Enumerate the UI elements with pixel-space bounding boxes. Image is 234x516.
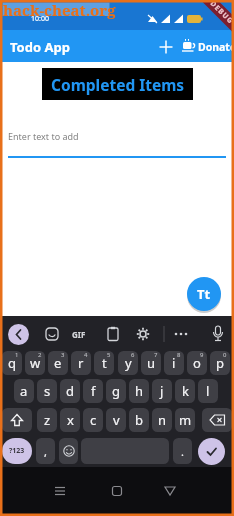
- button[interactable]: .: [173, 438, 192, 464]
- staticText: p: [216, 354, 224, 372]
- staticText: w: [30, 354, 41, 372]
- staticText: y: [125, 354, 132, 372]
- staticText: 5: [107, 351, 111, 359]
- button[interactable]: [150, 475, 190, 511]
- staticText: b: [135, 411, 143, 429]
- button[interactable]: w: [25, 351, 45, 375]
- staticText: 9: [200, 351, 204, 359]
- staticText: 2: [38, 351, 42, 359]
- button[interactable]: [2, 408, 32, 432]
- button[interactable]: q: [2, 351, 22, 375]
- staticText: Donate: [198, 40, 234, 54]
- button[interactable]: i: [164, 351, 184, 375]
- button[interactable]: s: [37, 379, 57, 403]
- button[interactable]: r: [71, 351, 91, 375]
- button[interactable]: x: [60, 408, 80, 432]
- staticText: f: [91, 382, 96, 400]
- button[interactable]: [40, 475, 80, 511]
- button[interactable]: z: [37, 408, 57, 432]
- staticText: 6: [131, 351, 135, 359]
- button[interactable]: [8, 324, 29, 345]
- staticText: n: [158, 411, 167, 429]
- button[interactable]: y: [118, 351, 138, 375]
- staticText: 1: [15, 351, 19, 359]
- button[interactable]: t: [94, 351, 114, 375]
- button[interactable]: [59, 438, 78, 464]
- button[interactable]: m: [175, 408, 195, 432]
- staticText: u: [147, 354, 156, 372]
- staticText: k: [182, 382, 189, 400]
- staticText: d: [66, 382, 74, 400]
- button[interactable]: v: [106, 408, 126, 432]
- staticText: GIF: [72, 329, 86, 340]
- staticText: ?123: [9, 446, 25, 456]
- staticText: x: [67, 411, 74, 429]
- staticText: ,: [44, 444, 47, 459]
- staticText: hack-cheat.org: [3, 0, 116, 20]
- staticText: s: [44, 382, 51, 400]
- staticText: i: [172, 354, 176, 372]
- button[interactable]: n: [152, 408, 172, 432]
- button[interactable]: b: [129, 408, 149, 432]
- button[interactable]: Tt: [187, 277, 221, 311]
- button[interactable]: p: [210, 351, 230, 375]
- staticText: Tt: [197, 285, 211, 303]
- staticText: j: [160, 382, 164, 400]
- button[interactable]: Completed Items: [42, 68, 193, 100]
- staticText: 10:00: [31, 14, 49, 24]
- staticText: 3: [61, 351, 65, 359]
- staticText: t: [102, 354, 107, 372]
- button[interactable]: d: [60, 379, 80, 403]
- staticText: z: [44, 411, 51, 429]
- button[interactable]: l: [198, 379, 218, 403]
- staticText: m: [179, 411, 192, 429]
- staticText: o: [193, 354, 201, 372]
- staticText: r: [78, 354, 84, 372]
- button[interactable]: [97, 475, 137, 511]
- staticText: 0: [223, 351, 227, 359]
- staticText: c: [90, 411, 97, 429]
- staticText: g: [112, 382, 120, 400]
- staticText: 8: [177, 351, 181, 359]
- button[interactable]: Donate: [181, 36, 234, 58]
- button[interactable]: a: [14, 379, 34, 403]
- staticText: DEBUG: [208, 0, 234, 27]
- button[interactable]: c: [83, 408, 103, 432]
- staticText: l: [206, 382, 210, 400]
- staticText: q: [8, 354, 16, 372]
- staticText: e: [54, 354, 62, 372]
- staticText: v: [113, 411, 120, 429]
- button[interactable]: [155, 36, 177, 58]
- button[interactable]: h: [129, 379, 149, 403]
- button[interactable]: u: [141, 351, 161, 375]
- button[interactable]: ?123: [2, 438, 32, 464]
- button[interactable]: f: [83, 379, 103, 403]
- staticText: .: [181, 444, 184, 459]
- staticText: 4: [84, 351, 88, 359]
- button[interactable]: ,: [36, 438, 55, 464]
- button[interactable]: o: [187, 351, 207, 375]
- button[interactable]: k: [175, 379, 195, 403]
- staticText: Enter text to add: [8, 130, 79, 142]
- staticText: Todo App: [10, 38, 70, 56]
- button[interactable]: [202, 408, 232, 432]
- button[interactable]: g: [106, 379, 126, 403]
- button[interactable]: [198, 438, 225, 465]
- staticText: h: [135, 382, 144, 400]
- button[interactable]: e: [48, 351, 68, 375]
- staticText: Completed Items: [51, 74, 185, 95]
- staticText: a: [20, 382, 28, 400]
- button[interactable]: Enter text to add: [4, 124, 230, 160]
- staticText: 7: [154, 351, 158, 359]
- button[interactable]: j: [152, 379, 172, 403]
